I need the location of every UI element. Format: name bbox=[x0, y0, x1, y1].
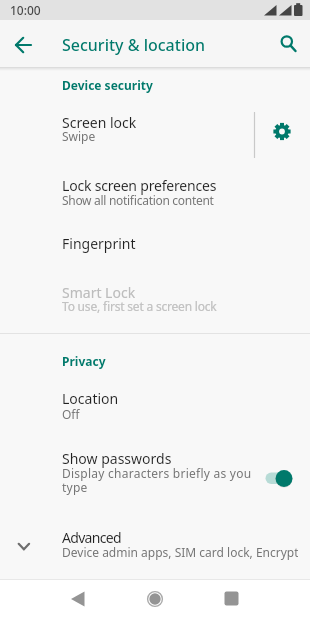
staticText: Lock screen preferences bbox=[62, 176, 217, 195]
staticText: Advanced bbox=[62, 528, 121, 547]
button[interactable] bbox=[0, 440, 310, 502]
staticText: Location bbox=[62, 389, 119, 408]
staticText: Privacy bbox=[62, 353, 106, 369]
staticText: 10:00 bbox=[10, 2, 41, 18]
staticText: Display characters briefly as you bbox=[62, 465, 252, 481]
button[interactable] bbox=[0, 100, 254, 162]
staticText: Screen lock bbox=[62, 113, 137, 132]
staticText: Security & location bbox=[62, 34, 206, 56]
staticText: Show passwords bbox=[62, 449, 172, 468]
staticText: To use, first set a screen lock bbox=[62, 298, 217, 314]
staticText: Show all notification content bbox=[62, 192, 214, 208]
staticText: Device admin apps, SIM card lock, Encryp… bbox=[62, 544, 298, 560]
staticText: Device security bbox=[62, 77, 153, 93]
button[interactable] bbox=[208, 579, 256, 620]
button[interactable] bbox=[0, 516, 310, 572]
staticText: Off bbox=[62, 406, 80, 422]
staticText: type bbox=[62, 479, 88, 495]
button[interactable] bbox=[0, 224, 310, 264]
button[interactable] bbox=[0, 162, 310, 224]
staticText: Fingerprint bbox=[62, 234, 136, 253]
button[interactable] bbox=[0, 20, 48, 68]
staticText: Swipe bbox=[62, 128, 96, 144]
staticText: Smart Lock bbox=[62, 283, 136, 302]
button[interactable] bbox=[131, 579, 179, 620]
button[interactable] bbox=[0, 378, 310, 424]
button[interactable] bbox=[54, 579, 102, 620]
button[interactable] bbox=[262, 20, 310, 68]
button[interactable] bbox=[254, 100, 310, 162]
button[interactable] bbox=[0, 264, 310, 326]
